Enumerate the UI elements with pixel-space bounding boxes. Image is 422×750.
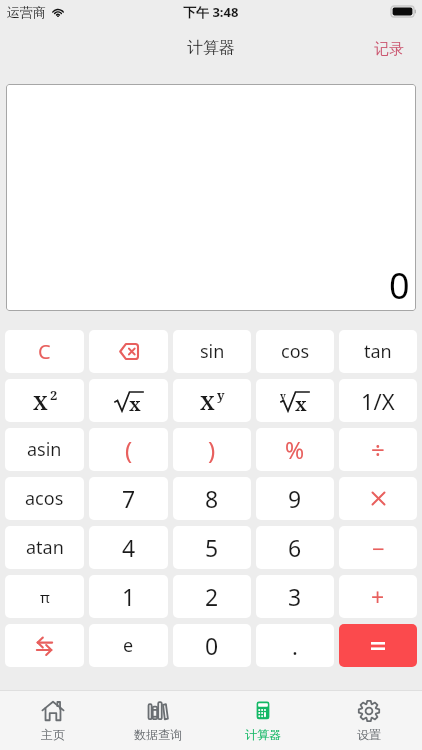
button[interactable]: cos [256, 330, 334, 373]
staticText: y [280, 389, 286, 403]
button[interactable]: x squared [5, 379, 84, 422]
button[interactable]: + [339, 575, 417, 618]
staticText: acos [25, 486, 64, 511]
button[interactable]: 9 [256, 477, 334, 520]
button[interactable]: ÷ [339, 428, 417, 471]
button[interactable]: Multiply [339, 477, 417, 520]
staticText: % [285, 434, 305, 465]
button[interactable]: 1/X [339, 379, 417, 422]
staticText: ÷ [371, 433, 385, 466]
staticText: 0 [389, 261, 410, 310]
button[interactable]: 4 [89, 526, 168, 569]
button[interactable]: atan [5, 526, 84, 569]
staticText: x [295, 392, 307, 417]
staticText: ( [125, 433, 133, 466]
staticText: 记录 [374, 40, 404, 59]
button[interactable]: C [5, 330, 84, 373]
button[interactable]: square root [89, 379, 168, 422]
staticText: sin [200, 339, 225, 364]
button[interactable]: acos [5, 477, 84, 520]
button[interactable]: ) [173, 428, 251, 471]
button[interactable]: y-th root of x [256, 379, 334, 422]
button[interactable]: 主页 [0, 691, 105, 750]
button[interactable]: sin [173, 330, 251, 373]
button[interactable]: e [89, 624, 168, 667]
staticText: 2 [205, 581, 219, 612]
staticText: asin [27, 437, 62, 462]
button[interactable]: asin [5, 428, 84, 471]
staticText: 2 [50, 386, 58, 404]
button[interactable]: 3 [256, 575, 334, 618]
staticText: + [371, 581, 385, 612]
staticText: 5 [205, 532, 219, 563]
button[interactable]: History [358, 28, 422, 67]
staticText: 0 [205, 630, 219, 661]
staticText: 计算器 [245, 727, 281, 742]
staticText: 9 [288, 483, 302, 514]
staticText: X [200, 389, 215, 416]
staticText: x [129, 392, 141, 417]
staticText: 6 [288, 532, 302, 563]
staticText: cos [281, 339, 310, 364]
staticText: π [40, 587, 50, 607]
staticText: atan [26, 535, 64, 560]
button[interactable]: π [5, 575, 84, 618]
staticText: ) [208, 433, 216, 466]
staticText: 数据查询 [134, 727, 182, 742]
button[interactable]: 计算器 [210, 691, 316, 750]
button[interactable]: 2 [173, 575, 251, 618]
button[interactable]: Equals [339, 624, 417, 667]
staticText: 1 [122, 581, 136, 612]
staticText: X [33, 389, 48, 416]
button[interactable]: 5 [173, 526, 251, 569]
button[interactable]: Backspace [89, 330, 168, 373]
button[interactable]: 设置 [316, 691, 422, 750]
staticText: 设置 [357, 727, 381, 742]
button[interactable]: 1 [89, 575, 168, 618]
staticText: 1/X [361, 386, 395, 416]
staticText: tan [364, 339, 392, 364]
button[interactable]: ( [89, 428, 168, 471]
staticText: 8 [205, 483, 219, 514]
button[interactable]: 6 [256, 526, 334, 569]
staticText: 计算器 [187, 38, 235, 58]
button[interactable]: 0 [173, 624, 251, 667]
button[interactable]: − [339, 526, 417, 569]
staticText: 主页 [41, 727, 65, 742]
button[interactable]: x to the power y [173, 379, 251, 422]
staticText: − [372, 533, 385, 563]
staticText: 4 [122, 532, 136, 563]
staticText: 7 [122, 483, 136, 514]
staticText: 3 [288, 581, 302, 612]
staticText: y [217, 386, 225, 404]
staticText: 下午 3:48 [183, 3, 239, 21]
button[interactable]: % [256, 428, 334, 471]
button[interactable]: 7 [89, 477, 168, 520]
button[interactable]: tan [339, 330, 417, 373]
button[interactable]: 数据查询 [105, 691, 210, 750]
button[interactable]: Swap [5, 624, 84, 667]
staticText: e [123, 633, 134, 658]
button[interactable]: 8 [173, 477, 251, 520]
staticText: 运营商 [7, 4, 46, 20]
staticText: C [38, 338, 51, 365]
staticText: . [292, 631, 298, 661]
button[interactable]: . [256, 624, 334, 667]
